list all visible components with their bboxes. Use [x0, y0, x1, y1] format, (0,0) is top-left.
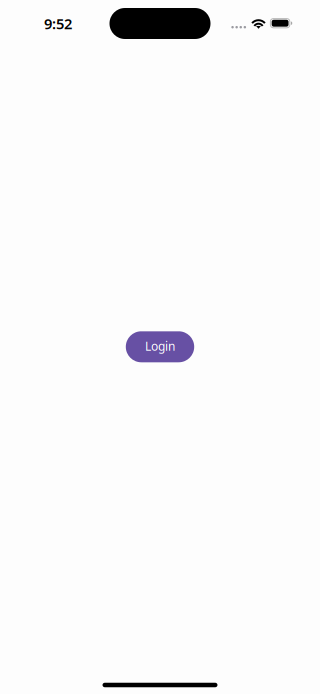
- button[interactable]: Login: [126, 331, 194, 362]
- staticText: 9:52: [44, 14, 72, 33]
- staticText: Login: [145, 338, 175, 354]
